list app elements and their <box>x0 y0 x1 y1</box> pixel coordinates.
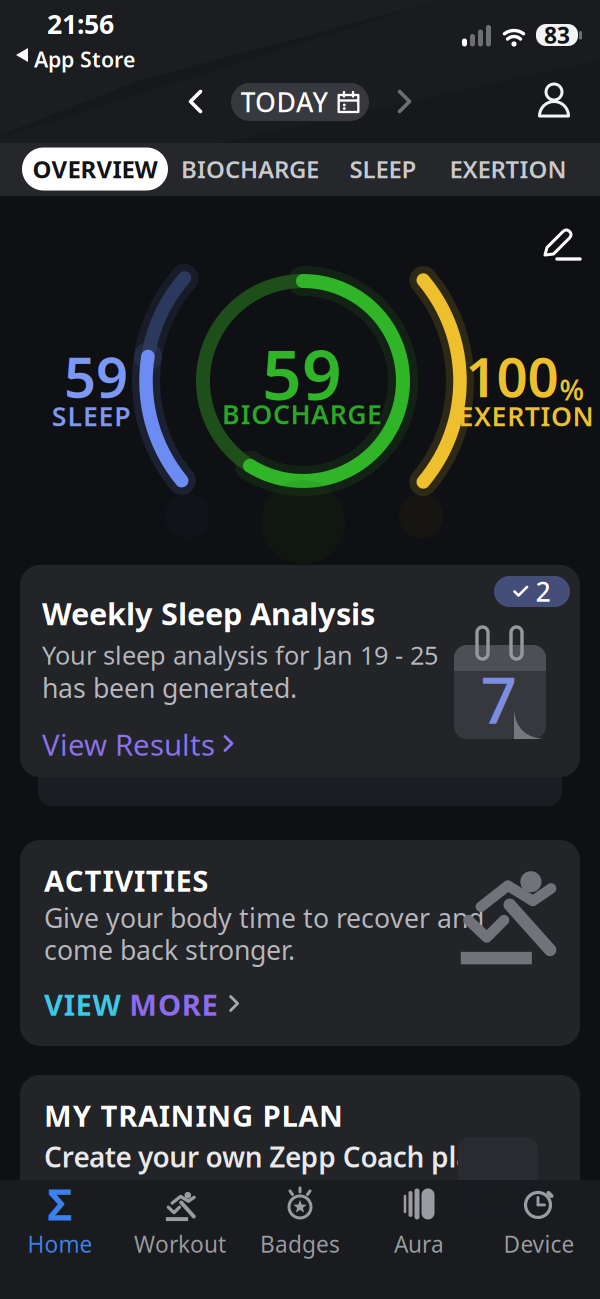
button[interactable]: Aura <box>364 1182 474 1262</box>
staticText: 21:56 <box>47 6 114 41</box>
staticText: Home <box>27 1229 92 1259</box>
staticText: 59 <box>262 327 342 419</box>
staticText: View Results <box>42 725 215 764</box>
staticText: SLEEP <box>349 153 416 185</box>
staticText: EXERTION <box>458 398 594 434</box>
staticText: BIOCHARGE <box>222 396 382 432</box>
button[interactable]: OVERVIEW <box>22 147 168 190</box>
staticText: SLEEP <box>52 398 130 434</box>
staticText: Your sleep analysis for Jan 19 - 25 <box>42 638 438 672</box>
staticText: Badges <box>260 1229 340 1259</box>
staticText: 83 <box>544 20 570 50</box>
staticText: 59 <box>64 339 128 413</box>
staticText: 100 <box>465 340 558 412</box>
staticText: VIEW <box>44 985 120 1024</box>
staticText: Create your own Zepp Coach plan <box>44 1138 490 1175</box>
staticText: TODAY <box>240 84 328 120</box>
staticText: 2 <box>535 574 550 609</box>
staticText: EXERTION <box>449 153 566 185</box>
button[interactable]: MY TRAINING PLAN <box>20 1075 580 1299</box>
staticText: App Store <box>34 45 135 73</box>
button[interactable]: ACTIVITIES <box>20 840 580 1046</box>
staticText: 7 <box>480 656 517 741</box>
button[interactable]: Edit <box>540 224 582 262</box>
button[interactable]: Σ <box>5 1182 115 1262</box>
button[interactable]: Workout <box>125 1182 235 1262</box>
button[interactable]: TODAY <box>231 83 369 121</box>
staticText: Weekly Sleep Analysis <box>42 593 375 634</box>
button[interactable]: Badges <box>245 1182 355 1262</box>
staticText: Σ <box>47 1176 72 1232</box>
button[interactable]: SLEEP <box>349 153 416 185</box>
staticText: BIOCHARGE <box>181 153 319 185</box>
button[interactable]: Previous day <box>189 90 203 114</box>
staticText: MORE <box>120 985 218 1024</box>
staticText: OVERVIEW <box>32 153 157 185</box>
button[interactable]: BIOCHARGE <box>181 153 319 185</box>
staticText: Aura <box>394 1229 444 1259</box>
button[interactable]: Profile <box>534 79 574 123</box>
staticText: Workout <box>134 1229 226 1259</box>
button[interactable]: Next day <box>398 90 412 114</box>
staticText: has been generated. <box>42 670 297 705</box>
staticText: and reach your goals with coach <box>44 1174 506 1213</box>
staticText: come back stronger. <box>44 932 295 967</box>
button[interactable]: 2 <box>20 565 580 777</box>
staticText: Give your body time to recover and <box>44 900 484 935</box>
staticText: MY TRAINING PLAN <box>44 1096 343 1135</box>
button[interactable]: EXERTION <box>449 153 566 185</box>
staticText: % <box>559 371 584 408</box>
staticText: ACTIVITIES <box>44 861 208 900</box>
button[interactable]: Device <box>484 1182 594 1262</box>
staticText: Device <box>503 1229 574 1259</box>
